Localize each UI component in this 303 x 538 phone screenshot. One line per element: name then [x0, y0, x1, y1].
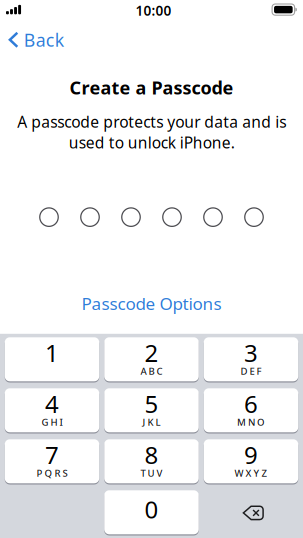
staticText: Back — [24, 28, 64, 51]
staticText: 0 — [144, 493, 158, 525]
staticText: J K L — [142, 416, 160, 428]
button[interactable]: 9 — [204, 439, 298, 484]
staticText: D E F — [240, 365, 261, 377]
staticText: 8 — [144, 439, 158, 471]
staticText: M N O — [237, 416, 265, 428]
staticText: A B C — [140, 365, 162, 377]
button[interactable]: Back — [0, 23, 76, 56]
staticText: 5 — [144, 388, 158, 420]
button[interactable]: Delete — [204, 490, 298, 535]
staticText: 4 — [45, 388, 59, 420]
staticText: 3 — [244, 337, 258, 369]
button[interactable]: 5 — [104, 388, 199, 433]
button[interactable]: 8 — [104, 439, 199, 484]
staticText: 7 — [45, 439, 59, 471]
staticText: 10:00 — [135, 1, 171, 20]
button[interactable]: 1 — [5, 337, 99, 382]
staticText: 6 — [244, 388, 258, 420]
staticText: Passcode Options — [81, 292, 221, 315]
staticText: A passcode protects your data and is use… — [17, 111, 286, 153]
staticText: T U V — [140, 467, 162, 479]
staticText: Create a Passcode — [69, 75, 233, 99]
button[interactable]: 3 — [204, 337, 298, 382]
button[interactable]: 7 — [5, 439, 99, 484]
button[interactable]: 2 — [104, 337, 199, 382]
staticText: W X Y Z — [234, 467, 267, 479]
staticText: P Q R S — [36, 467, 67, 479]
staticText: 9 — [244, 439, 258, 471]
staticText: G H I — [41, 416, 62, 428]
button[interactable]: 4 — [5, 388, 99, 433]
staticText: 2 — [144, 337, 158, 369]
button[interactable]: 0 — [104, 490, 199, 535]
button[interactable]: 6 — [204, 388, 298, 433]
button[interactable]: Passcode Options — [69, 287, 233, 320]
staticText: 1 — [45, 337, 59, 369]
